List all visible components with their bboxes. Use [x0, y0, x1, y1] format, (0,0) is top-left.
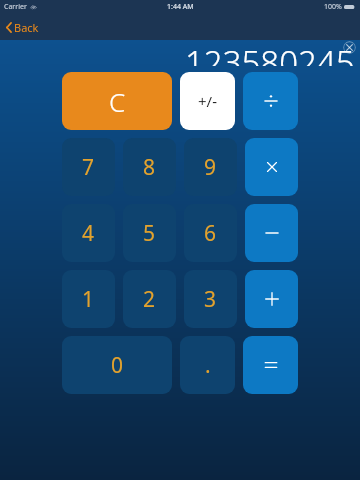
staticText: 1:44 AM: [167, 2, 194, 12]
button[interactable]: +/-: [180, 72, 235, 130]
staticText: 1: [82, 285, 95, 314]
button[interactable]: 5: [123, 204, 176, 262]
button[interactable]: 8: [123, 138, 176, 196]
button[interactable]: 1: [62, 270, 115, 328]
button[interactable]: 2: [123, 270, 176, 328]
button[interactable]: 9: [184, 138, 237, 196]
button[interactable]: Divide: [243, 72, 298, 130]
button[interactable]: C: [62, 72, 172, 130]
staticText: Back: [14, 20, 39, 35]
staticText: 7: [82, 153, 95, 182]
button[interactable]: 6: [184, 204, 237, 262]
button[interactable]: Close: [343, 41, 356, 54]
button[interactable]: Back: [0, 15, 51, 40]
staticText: 2: [143, 285, 156, 314]
button[interactable]: Subtract: [245, 204, 298, 262]
button[interactable]: Add: [245, 270, 298, 328]
staticText: 4: [82, 219, 95, 248]
button[interactable]: 3: [184, 270, 237, 328]
staticText: 3: [204, 285, 217, 314]
button[interactable]: .: [180, 336, 235, 394]
button[interactable]: 7: [62, 138, 115, 196]
staticText: 6: [204, 219, 217, 248]
staticText: 8: [143, 153, 156, 182]
button[interactable]: Multiply: [245, 138, 298, 196]
staticText: 9: [204, 153, 217, 182]
staticText: +/-: [198, 91, 217, 111]
staticText: Carrier: [4, 2, 27, 12]
staticText: 100%: [324, 2, 342, 12]
button[interactable]: Equals: [243, 336, 298, 394]
staticText: 0: [111, 351, 124, 380]
staticText: 123580245: [185, 40, 355, 66]
button[interactable]: 0: [62, 336, 172, 394]
staticText: .: [205, 351, 211, 380]
staticText: 5: [143, 219, 156, 248]
button[interactable]: 4: [62, 204, 115, 262]
staticText: C: [109, 84, 126, 119]
